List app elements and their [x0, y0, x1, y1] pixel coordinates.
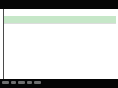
button[interactable]: Toolbar item 2 — [11, 81, 16, 84]
button[interactable]: Toolbar item 4 — [27, 81, 32, 84]
button[interactable]: Toolbar item 3 — [18, 81, 25, 84]
button[interactable]: Toolbar item 1 — [2, 81, 9, 84]
button[interactable]: Toolbar item 5 — [34, 81, 41, 84]
